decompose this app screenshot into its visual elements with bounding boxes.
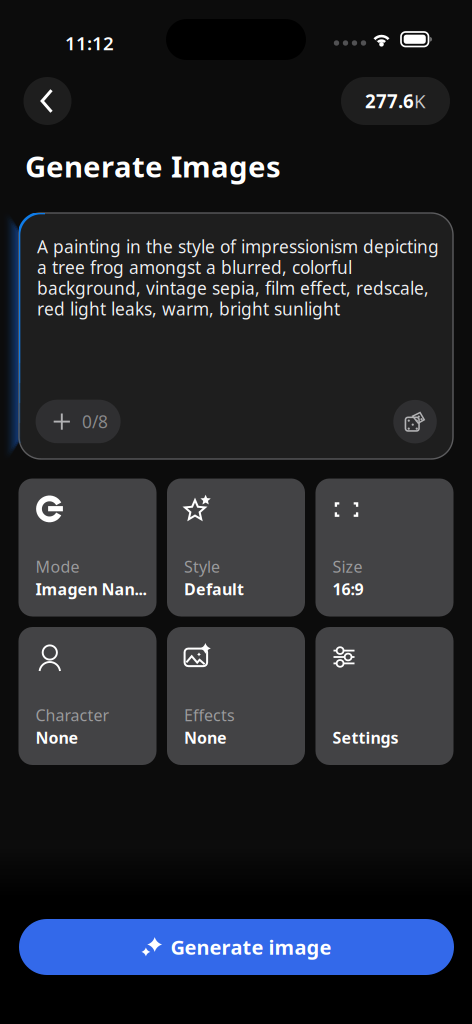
staticText: Default [184, 578, 244, 600]
staticText: None [35, 727, 78, 748]
staticText: Character [35, 704, 109, 726]
staticText: 277.6 [365, 89, 414, 113]
staticText: Generate image [170, 934, 331, 960]
staticText: Style [184, 556, 220, 577]
button[interactable]: 277.6 [341, 77, 450, 125]
button[interactable]: Randomize prompt [393, 400, 437, 443]
button[interactable]: Generate image [19, 919, 454, 975]
staticText: 0/8 [82, 410, 108, 433]
staticText: 16:9 [332, 578, 363, 600]
staticText: 11:12 [65, 31, 114, 55]
staticText: Generate Images [25, 146, 281, 185]
button[interactable]: Size [315, 478, 453, 616]
staticText: A painting in the style of impressionism… [37, 235, 439, 320]
button[interactable]: Effects [167, 627, 305, 765]
button[interactable]: Mode [18, 478, 156, 616]
button[interactable]: Back [23, 77, 71, 125]
button[interactable]: 0/8 [36, 400, 121, 443]
staticText: K [414, 89, 426, 113]
button[interactable]: Character [18, 627, 156, 765]
staticText: Effects [184, 704, 235, 726]
staticText: Mode [35, 556, 79, 577]
staticText: Settings [332, 727, 398, 748]
staticText: None [184, 727, 227, 748]
button[interactable]: Style [167, 478, 305, 616]
staticText: Imagen Nan... [35, 578, 146, 600]
button[interactable]: Settings [315, 627, 453, 765]
staticText: Size [332, 556, 362, 577]
